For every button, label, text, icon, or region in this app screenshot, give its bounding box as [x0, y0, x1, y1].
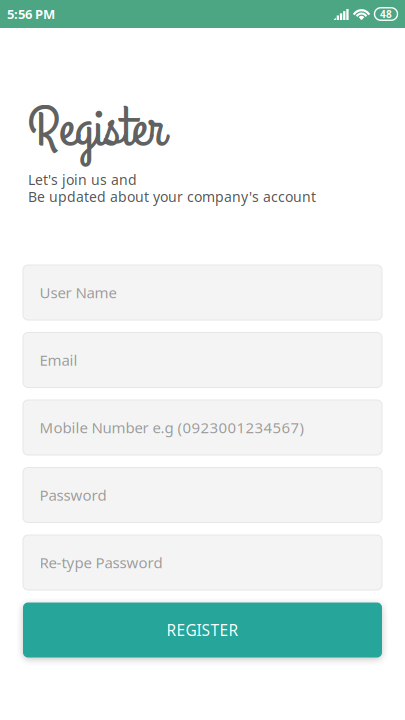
button[interactable]: User Name	[23, 265, 382, 320]
staticText: Re-type Password	[39, 552, 162, 573]
button[interactable]: Mobile Number e.g (0923001234567)	[23, 400, 382, 455]
staticText: 5:56 PM	[7, 5, 55, 23]
button[interactable]: Email	[23, 332, 382, 387]
staticText: 48	[380, 7, 392, 21]
staticText: Mobile Number e.g (0923001234567)	[39, 417, 304, 438]
staticText: Email	[39, 350, 77, 370]
staticText: Let's join us and	[28, 170, 137, 189]
button[interactable]: Password	[23, 467, 382, 522]
button[interactable]: Re-type Password	[23, 535, 382, 590]
staticText: REGISTER	[166, 619, 238, 640]
staticText: User Name	[39, 282, 116, 303]
staticText: Be updated about your company's account	[28, 187, 316, 206]
staticText: Register	[28, 92, 165, 166]
staticText: Password	[39, 485, 106, 505]
button[interactable]: REGISTER	[23, 602, 382, 657]
